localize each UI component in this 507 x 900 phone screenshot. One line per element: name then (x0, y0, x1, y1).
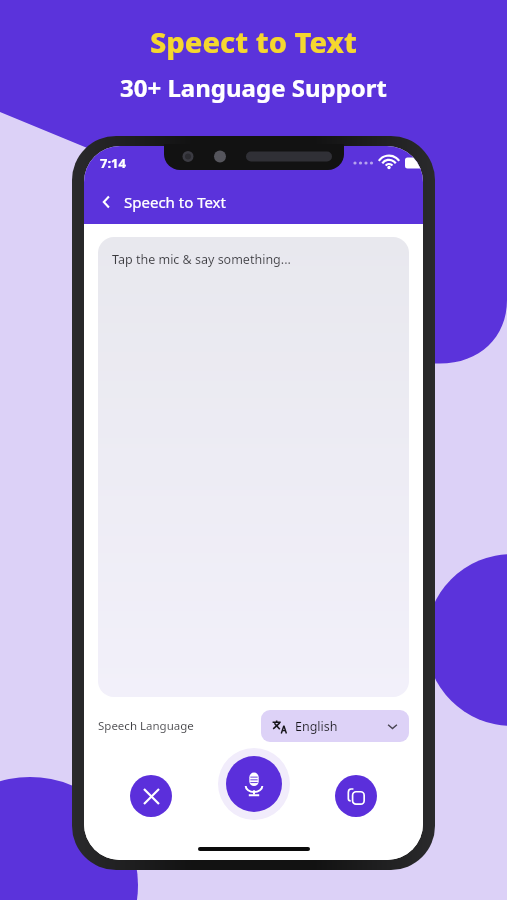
staticText: Speech Language (98, 718, 194, 734)
staticText: Speect to Text (150, 22, 357, 61)
staticText: 7:14 (100, 154, 126, 172)
staticText: Speech to Text (124, 192, 226, 212)
button[interactable]: Clear (130, 775, 172, 817)
button[interactable]: Copy (335, 775, 377, 817)
button[interactable]: Back (90, 185, 124, 219)
staticText: 30+ Language Support (120, 71, 387, 104)
button[interactable]: English (261, 710, 409, 742)
button[interactable]: Start recording (226, 756, 282, 812)
staticText: English (295, 718, 338, 735)
staticText: Tap the mic & say something... (112, 251, 291, 268)
button[interactable]: Tap the mic & say something... (98, 237, 409, 697)
